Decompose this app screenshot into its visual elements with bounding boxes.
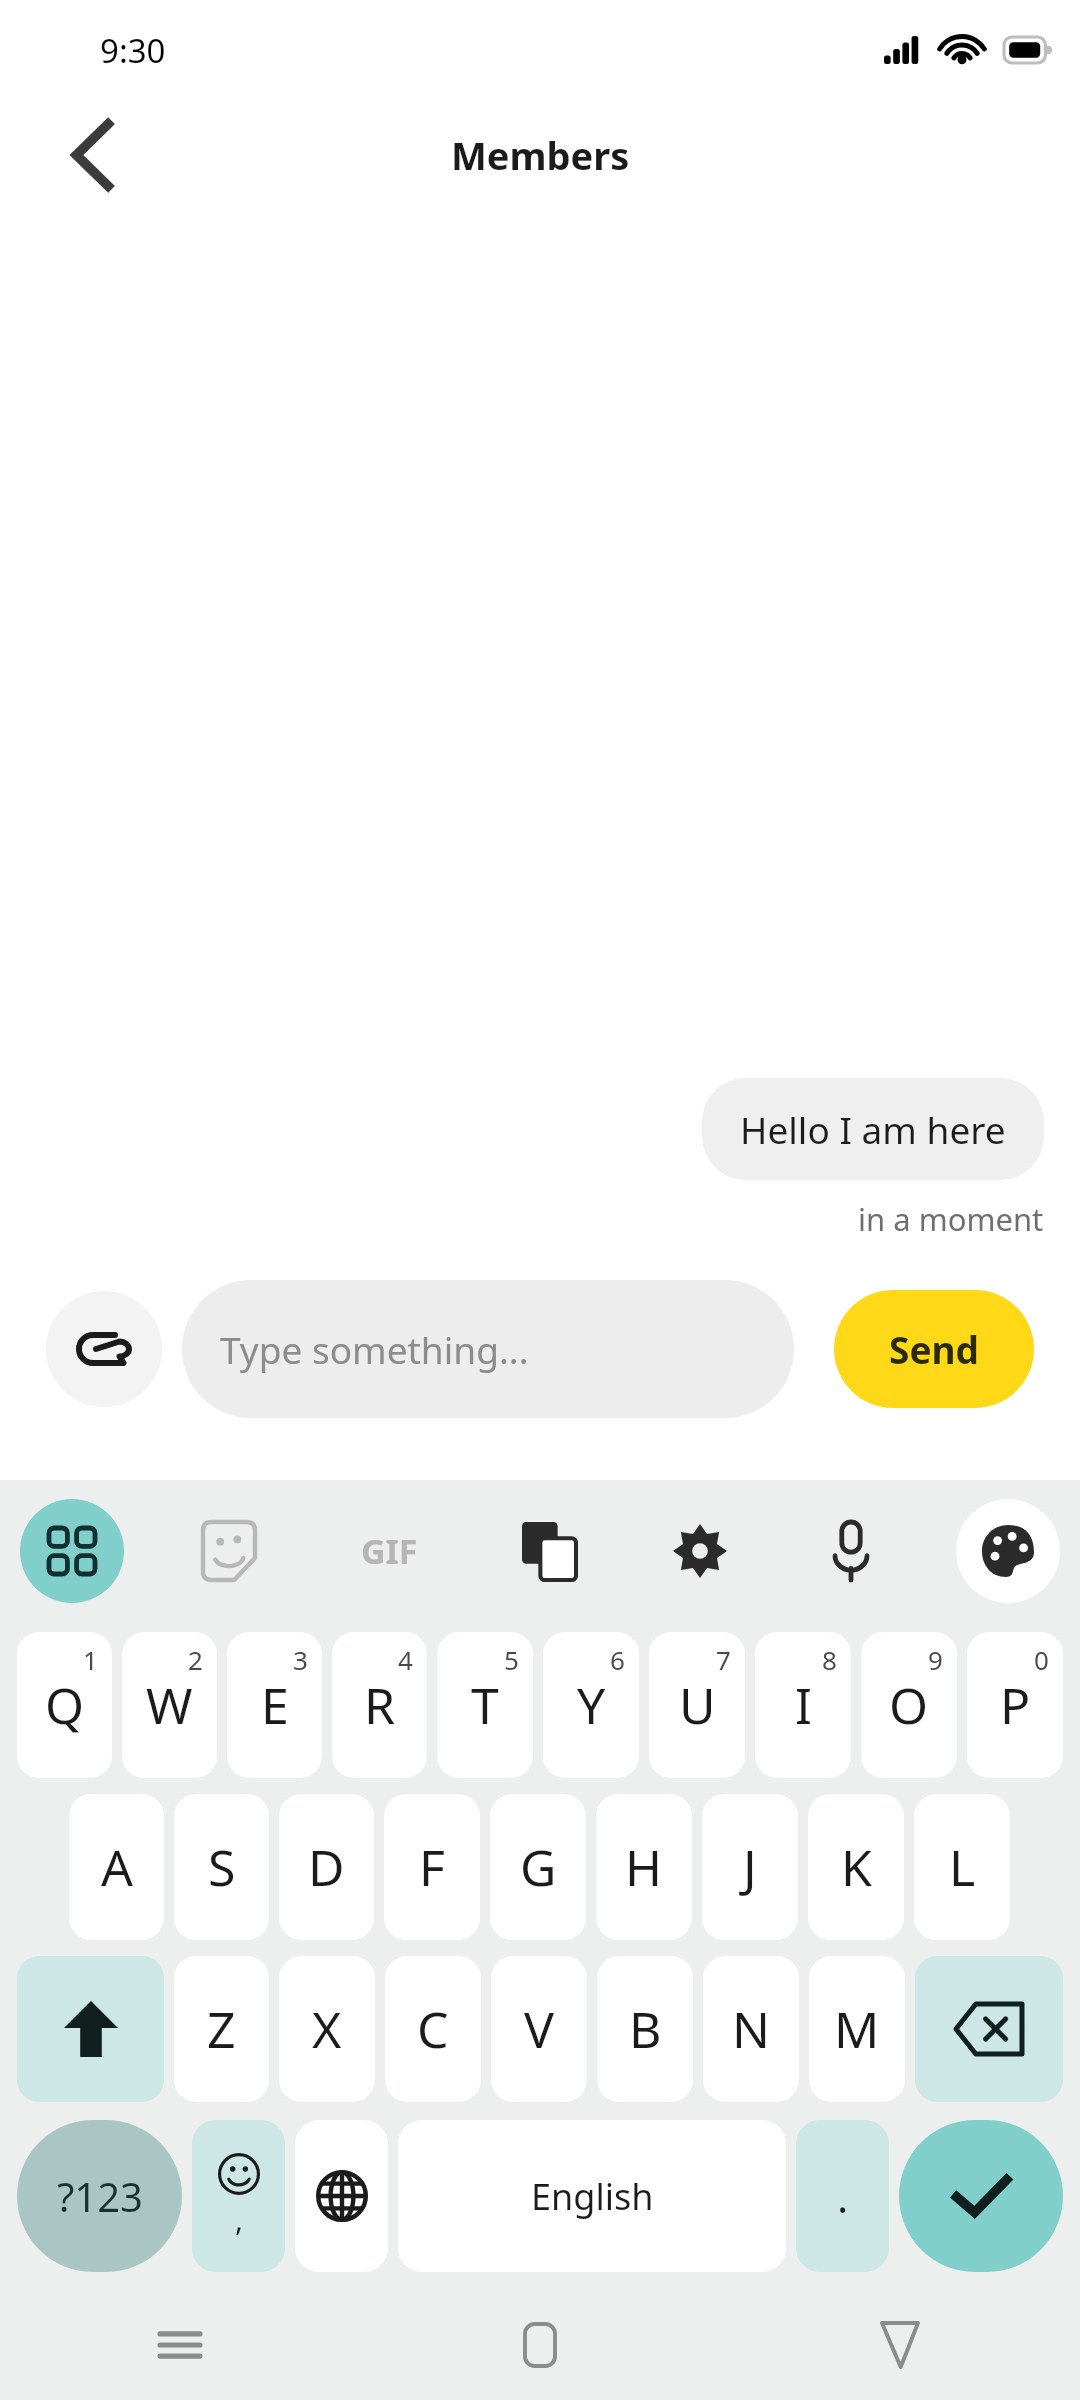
button[interactable]: Keyboard modes [20,1499,124,1603]
button[interactable]: Back [720,2290,1080,2400]
staticText: 6 [610,1642,625,1677]
button[interactable]: Home [360,2290,720,2400]
button[interactable]: Enter [899,2120,1063,2272]
staticText: E [261,1671,289,1739]
staticText: L [949,1833,976,1901]
staticText: C [417,1995,449,2063]
button[interactable]: G [490,1794,586,1940]
staticText: W [146,1671,193,1739]
staticText: X [312,1995,342,2063]
staticText: R [364,1671,396,1739]
button[interactable]: Q [17,1632,112,1778]
button[interactable]: I [755,1632,851,1778]
button[interactable]: D [279,1794,374,1940]
staticText: J [743,1833,757,1901]
button[interactable]: L [914,1794,1010,1940]
staticText: in a moment [858,1198,1044,1240]
button[interactable]: Voice input [805,1505,897,1597]
staticText: A [101,1833,133,1901]
button[interactable]: Send [834,1290,1034,1408]
staticText: H [625,1833,663,1901]
button[interactable]: K [808,1794,904,1940]
staticText: Q [45,1671,85,1739]
button[interactable]: Theme [956,1499,1060,1603]
button[interactable]: F [384,1794,480,1940]
staticText: English [531,2172,654,2221]
button[interactable]: Hello I am here [702,1078,1044,1180]
button[interactable]: Emoji [192,2120,285,2272]
button[interactable]: Recent apps [0,2290,360,2400]
staticText: 4 [398,1642,413,1677]
button[interactable]: U [649,1632,745,1778]
button[interactable]: R [332,1632,427,1778]
button[interactable]: GIF [334,1498,444,1604]
button[interactable]: V [491,1956,587,2102]
button[interactable]: B [597,1956,693,2102]
button[interactable]: Stickers [183,1505,275,1597]
button[interactable]: ?123 [17,2120,182,2272]
staticText: . [837,2168,849,2225]
button[interactable]: Type something... [182,1280,794,1418]
button[interactable]: Settings [654,1505,746,1597]
staticText: GIF [361,1528,418,1574]
button[interactable]: Z [174,1956,269,2102]
button[interactable]: Backspace [915,1956,1063,2102]
staticText: 5 [504,1642,519,1677]
staticText: D [308,1833,345,1901]
staticText: Members [451,129,630,181]
button[interactable]: W [122,1632,217,1778]
button[interactable]: Translate [503,1505,595,1597]
button[interactable]: O [861,1632,957,1778]
staticText: 3 [293,1642,308,1677]
button[interactable]: J [702,1794,798,1940]
staticText: U [679,1671,716,1739]
staticText: N [732,1995,770,2063]
staticText: P [1000,1671,1031,1739]
button[interactable]: . [796,2120,889,2272]
staticText: T [471,1671,499,1739]
staticText: 0 [1034,1642,1049,1677]
button[interactable]: M [809,1956,905,2102]
staticText: 2 [188,1642,203,1677]
button[interactable]: S [174,1794,269,1940]
button[interactable]: Back [48,109,140,201]
staticText: M [834,1995,880,2063]
button[interactable]: N [703,1956,799,2102]
staticText: S [208,1833,236,1901]
staticText: 9:30 [100,28,166,73]
staticText: ?123 [57,2169,143,2223]
staticText: Z [207,1995,236,2063]
button[interactable]: P [967,1632,1063,1778]
staticText: V [524,1995,554,2063]
staticText: Hello I am here [740,1104,1006,1154]
button[interactable]: Shift [17,1956,164,2102]
staticText: , [235,2199,244,2240]
staticText: 8 [822,1642,837,1677]
staticText: G [520,1833,557,1901]
staticText: I [795,1671,812,1739]
button[interactable]: Y [543,1632,639,1778]
staticText: K [841,1833,872,1901]
staticText: B [629,1995,662,2063]
staticText: Send [889,1324,979,1374]
button[interactable]: Change language [295,2120,388,2272]
button[interactable]: H [596,1794,692,1940]
staticText: 1 [83,1642,98,1677]
button[interactable]: X [279,1956,375,2102]
button[interactable]: English [398,2120,786,2272]
staticText: 9 [928,1642,943,1677]
staticText: Type something... [220,1324,529,1374]
button[interactable]: Attach file [46,1291,162,1407]
button[interactable]: T [437,1632,533,1778]
staticText: O [889,1671,929,1739]
button[interactable]: E [227,1632,322,1778]
staticText: 7 [716,1642,731,1677]
button[interactable]: A [69,1794,164,1940]
staticText: Y [577,1671,606,1739]
button[interactable]: C [385,1956,481,2102]
staticText: F [419,1833,445,1901]
